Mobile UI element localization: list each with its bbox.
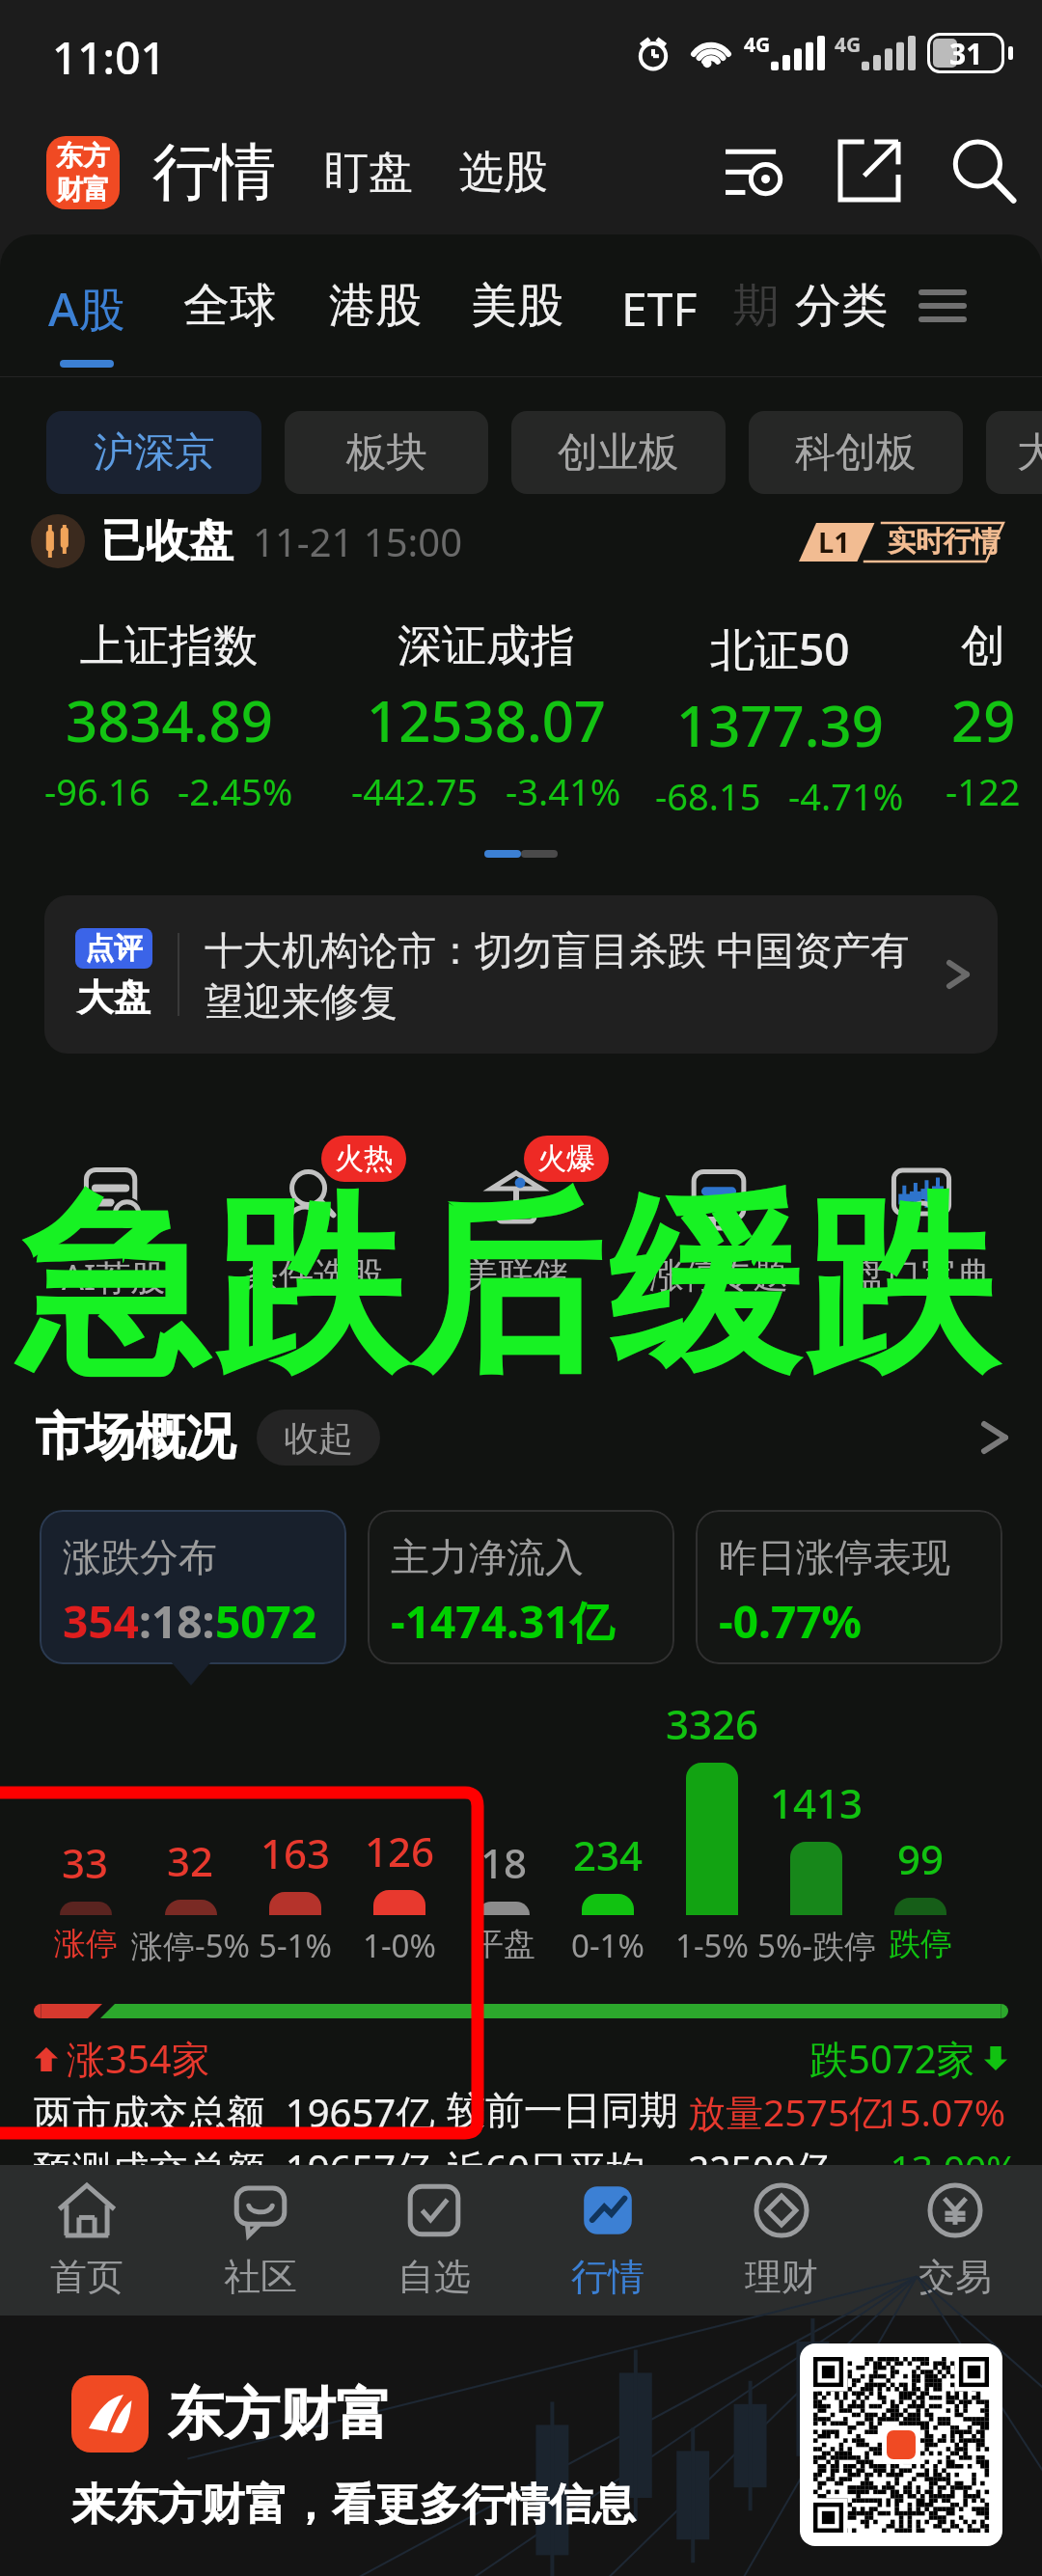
staticText: 99 [897,1831,945,1886]
staticText: 1-0% [363,1924,436,1967]
staticText: 涨停-5% [131,1924,250,1967]
button[interactable]: 大 [986,411,1042,494]
button[interactable]: 科创板 [749,411,963,494]
button[interactable]: 分享 [828,129,911,212]
staticText: 收起 [284,1416,353,1460]
staticText: 急跌后缓跌 [17,1167,1042,1408]
button[interactable]: 首页 [0,2165,174,2316]
button[interactable]: 创业板 [511,411,726,494]
staticText: 3834.89 [66,682,273,758]
staticText: 财富 [56,173,110,206]
staticText: -442.75 [351,766,479,816]
staticText: 创业板 [558,427,679,479]
staticText: 实时行情 [888,524,1000,560]
button[interactable]: 更多 [901,277,984,335]
staticText: 昨日涨停表现 [719,1533,950,1581]
staticText: 3326 [666,1696,759,1751]
staticText: 4G [744,31,771,59]
staticText: 交易 [919,2254,992,2300]
button[interactable]: 自选 [347,2165,521,2316]
staticText: 沪深京 [94,427,215,479]
staticText: 11:01 [52,27,166,88]
staticText: -68.15 [655,771,761,821]
staticText: 33 [62,1835,109,1890]
staticText: 北证50 [710,618,850,679]
staticText: 4G [835,31,862,59]
staticText: 较前一日同期 [447,2086,678,2134]
staticText: -2.45% [178,766,293,816]
button[interactable]: 主力净流入 [368,1510,674,1664]
button[interactable]: 搜索 [942,129,1025,212]
staticText: 上证指数 [80,618,258,674]
staticText: 创 [961,618,1005,674]
staticText: 社区 [224,2254,297,2300]
staticText: 29 [951,682,1016,758]
button[interactable]: 盯盘 [318,139,419,206]
button[interactable]: 涨跌分布 [40,1510,346,1664]
button[interactable]: 更多市场概况 [965,1409,1023,1466]
staticText: 首页 [50,2254,123,2300]
button[interactable]: 条件选股 [217,1166,410,1297]
staticText: 全球 [183,277,276,335]
staticText: 163 [260,1825,331,1880]
staticText: ETF [621,277,698,340]
staticText: L1 [818,523,850,561]
staticText: 126 [365,1823,435,1878]
staticText: 盘口宝典 [852,1253,991,1297]
button[interactable]: 美股 [448,277,587,335]
button[interactable]: 行情 [521,2165,695,2316]
staticText: 354 [63,1591,139,1652]
staticText: 自选 [398,2254,471,2300]
staticText: 1377.39 [676,687,884,763]
staticText: 理财 [745,2254,818,2300]
staticText: -1474.31亿 [391,1591,615,1652]
staticText: 22500亿 [688,2142,834,2167]
button[interactable]: 盘口宝典 [825,1166,1018,1297]
staticText: 深证成指 [398,618,575,674]
button[interactable]: AI荐股 [17,1166,210,1301]
staticText: 涨停专题 [649,1253,788,1297]
staticText: A股 [48,277,125,341]
staticText: -3.41% [506,766,621,816]
button[interactable]: ETF [587,277,731,340]
button[interactable]: 理财 [695,2165,868,2316]
button[interactable]: 选股 [453,139,554,206]
staticText: 1413 [770,1775,864,1830]
button[interactable]: 收起 [257,1410,380,1466]
staticText: 0-1% [571,1924,644,1967]
staticText: 涨354家 [67,2032,210,2085]
button[interactable]: 涨停专题 [622,1166,815,1297]
button[interactable]: 点评 [44,895,998,1054]
staticText: -96.16 [44,766,151,816]
button[interactable]: 交易 [868,2165,1042,2316]
staticText: 期 [733,277,780,335]
staticText: 32 [167,1833,214,1888]
button[interactable]: 板块 [285,411,488,494]
button[interactable]: 分类 [781,277,901,335]
button[interactable]: 沪深京 [46,411,261,494]
button[interactable]: 社区 [174,2165,347,2316]
button[interactable]: 设置 [714,129,797,212]
staticText: :18: [139,1591,215,1652]
staticText: 市场概况 [35,1406,235,1469]
button[interactable]: 美联储 [420,1166,613,1297]
staticText: 15.07% [878,2086,1006,2137]
staticText: 涨停 [54,1924,118,1964]
button[interactable]: 港股 [303,277,448,335]
staticText: 大 [1017,427,1042,479]
staticText: 11-21 15:00 [253,515,463,567]
button[interactable]: 全球 [156,277,303,335]
staticText: 科创板 [795,427,917,479]
staticText: 5-1% [259,1924,332,1967]
staticText: 跌5072家 [809,2032,975,2085]
staticText: 跌停 [889,1924,952,1964]
button[interactable]: A股 [17,277,156,368]
button[interactable]: 昨日涨停表现 [696,1510,1002,1664]
staticText: 近60日平均 [447,2142,645,2167]
staticText: 平盘 [472,1924,535,1964]
staticText: 东方 [56,139,110,173]
staticText: 放量2575亿 [688,2086,888,2137]
staticText: 31 [949,34,983,73]
staticText: 行情 [152,133,276,211]
staticText: 分类 [795,277,888,335]
